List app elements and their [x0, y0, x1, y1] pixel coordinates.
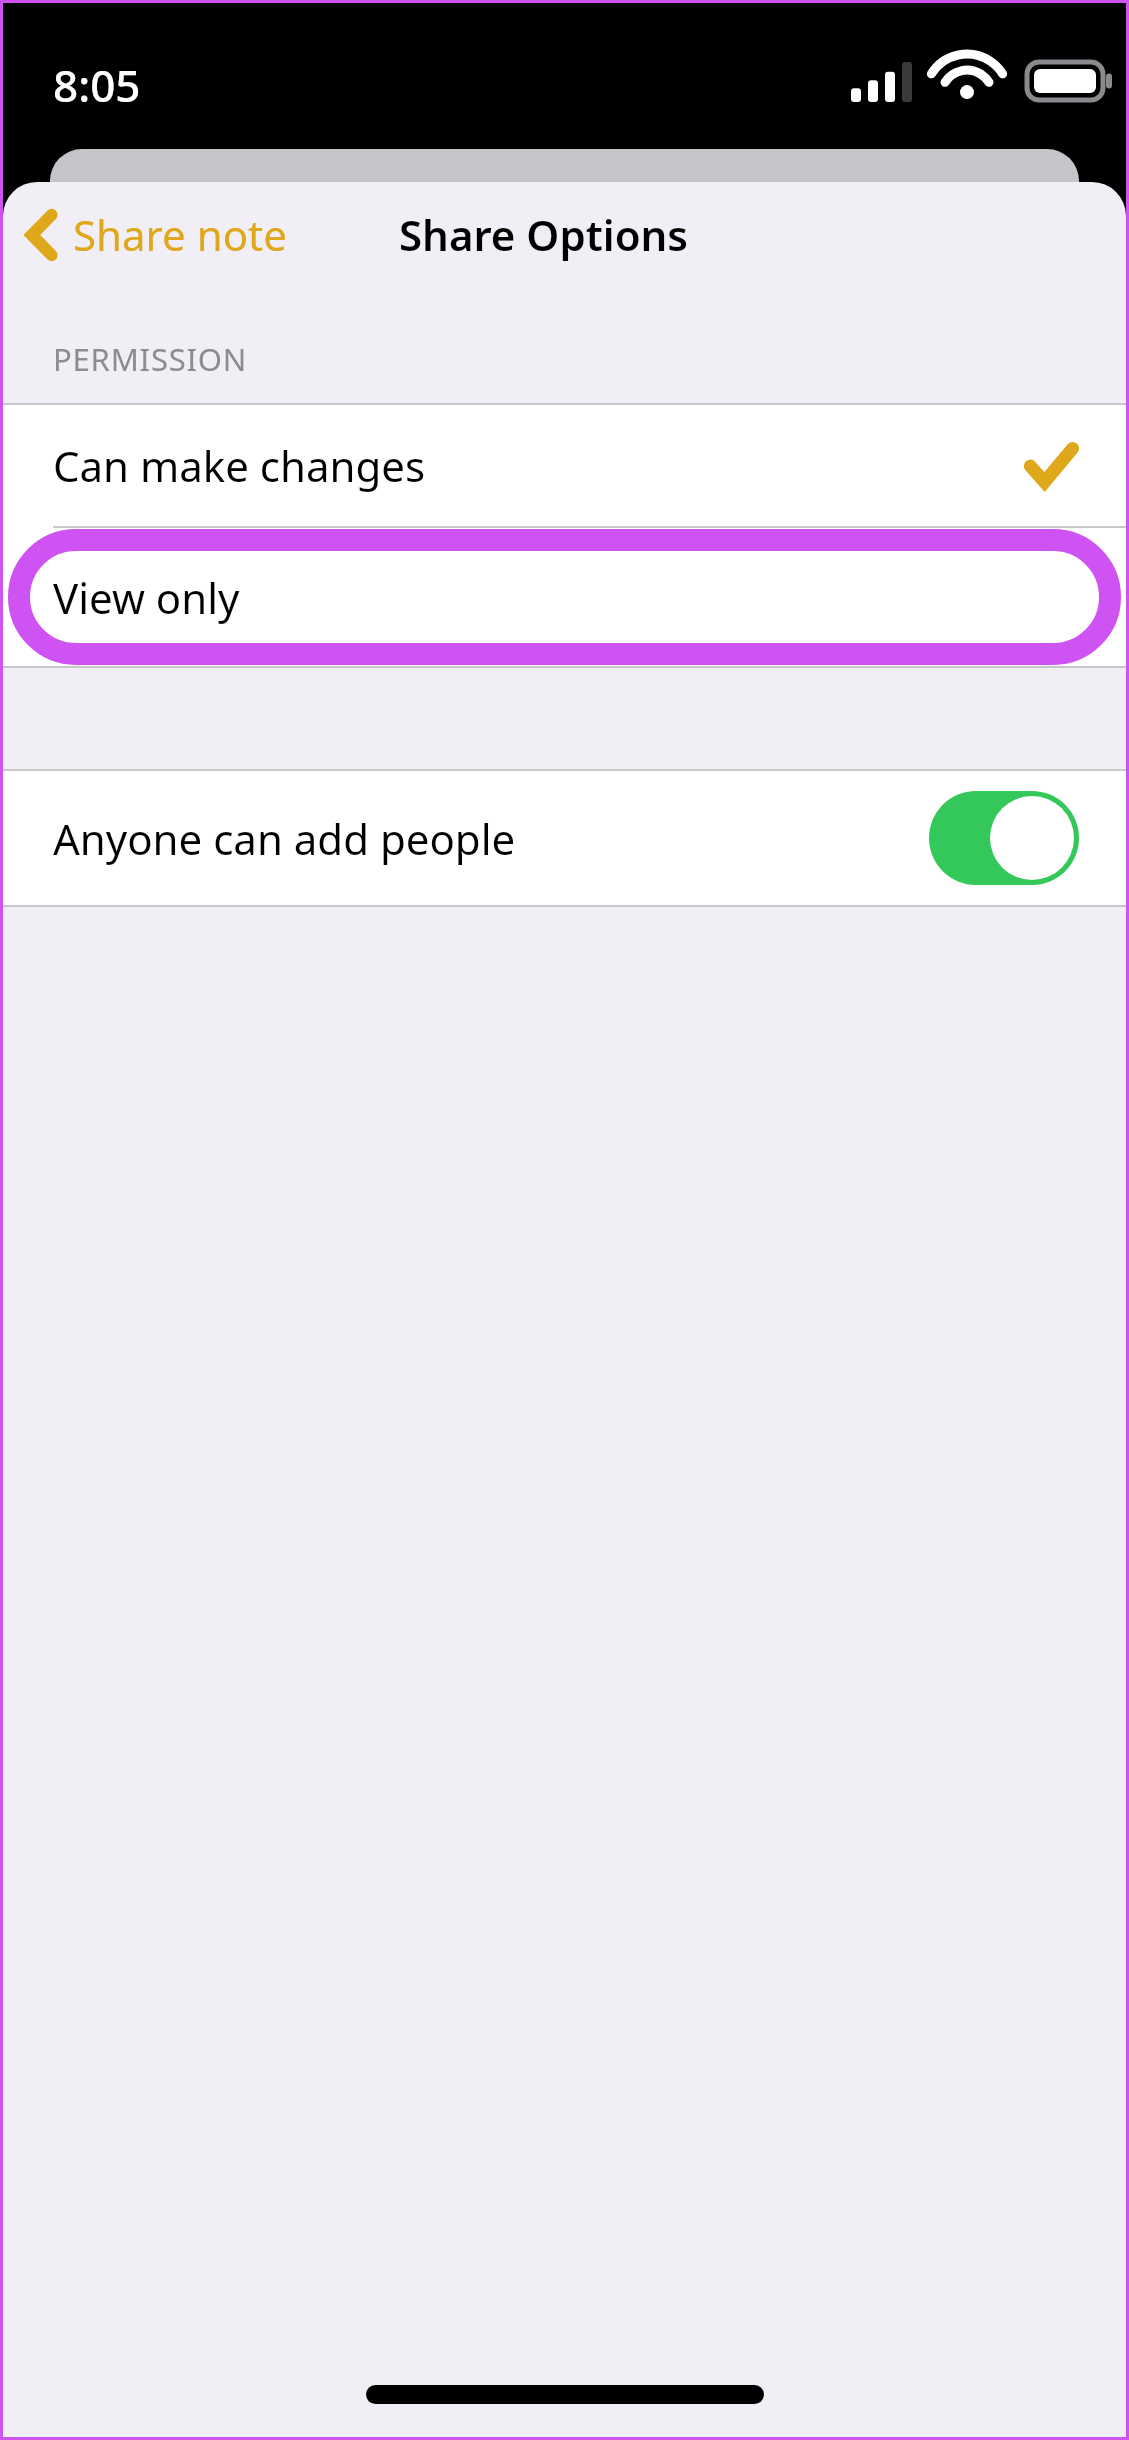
staticText: Share Options: [399, 206, 689, 263]
button[interactable]: Anyone can add people: [929, 791, 1079, 885]
staticText: View only: [53, 569, 240, 626]
button[interactable]: Anyone can add people: [3, 771, 1126, 905]
button[interactable]: Can make changes: [3, 405, 1126, 526]
staticText: Share note: [73, 206, 287, 263]
staticText: 8:05: [53, 55, 141, 115]
button[interactable]: View only: [3, 528, 1126, 666]
staticText: Anyone can add people: [53, 810, 516, 867]
button[interactable]: Back: [17, 196, 297, 273]
other: Selected: [1028, 446, 1074, 486]
staticText: PERMISSION: [53, 338, 248, 380]
other: Back: [27, 211, 57, 259]
staticText: Can make changes: [53, 437, 426, 494]
